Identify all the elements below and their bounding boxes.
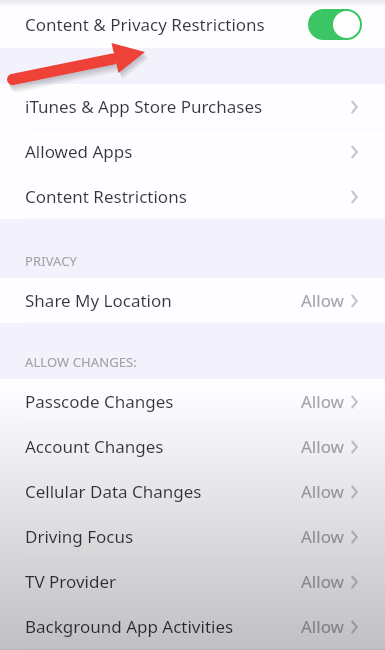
staticText: Cellular Data Changes xyxy=(25,480,202,503)
staticText: Passcode Changes xyxy=(25,390,174,413)
staticText: Allow xyxy=(301,525,344,548)
staticText: Allow xyxy=(301,615,344,638)
staticText: Allow xyxy=(301,570,344,593)
staticText: iTunes & App Store Purchases xyxy=(25,95,263,118)
staticText: TV Provider xyxy=(25,570,117,593)
button[interactable]: Driving Focus xyxy=(0,514,385,559)
button[interactable]: Allowed Apps xyxy=(0,129,385,174)
staticText: Content Restrictions xyxy=(25,185,187,208)
button[interactable]: Content Restrictions xyxy=(0,174,385,219)
staticText: Allow xyxy=(301,390,344,413)
staticText: Allowed Apps xyxy=(25,140,133,163)
staticText: PRIVACY xyxy=(25,252,77,270)
button[interactable]: Background App Activities xyxy=(0,604,385,649)
staticText: Allow xyxy=(301,289,344,312)
button[interactable]: Cellular Data Changes xyxy=(0,469,385,514)
button[interactable]: Content and Privacy Restrictions toggle xyxy=(308,9,362,40)
staticText: Allow xyxy=(301,480,344,503)
button[interactable]: TV Provider xyxy=(0,559,385,604)
staticText: Share My Location xyxy=(25,289,172,312)
button[interactable]: Account Changes xyxy=(0,424,385,469)
button[interactable]: Passcode Changes xyxy=(0,379,385,424)
staticText: Content & Privacy Restrictions xyxy=(25,13,265,36)
button[interactable]: Content & Privacy Restrictions xyxy=(0,0,385,48)
staticText: Allow xyxy=(301,435,344,458)
staticText: ALLOW CHANGES: xyxy=(25,353,137,371)
button[interactable]: Share My Location xyxy=(0,278,385,323)
staticText: Background App Activities xyxy=(25,615,234,638)
button[interactable]: iTunes & App Store Purchases xyxy=(0,84,385,129)
staticText: Driving Focus xyxy=(25,525,134,548)
staticText: Account Changes xyxy=(25,435,164,458)
